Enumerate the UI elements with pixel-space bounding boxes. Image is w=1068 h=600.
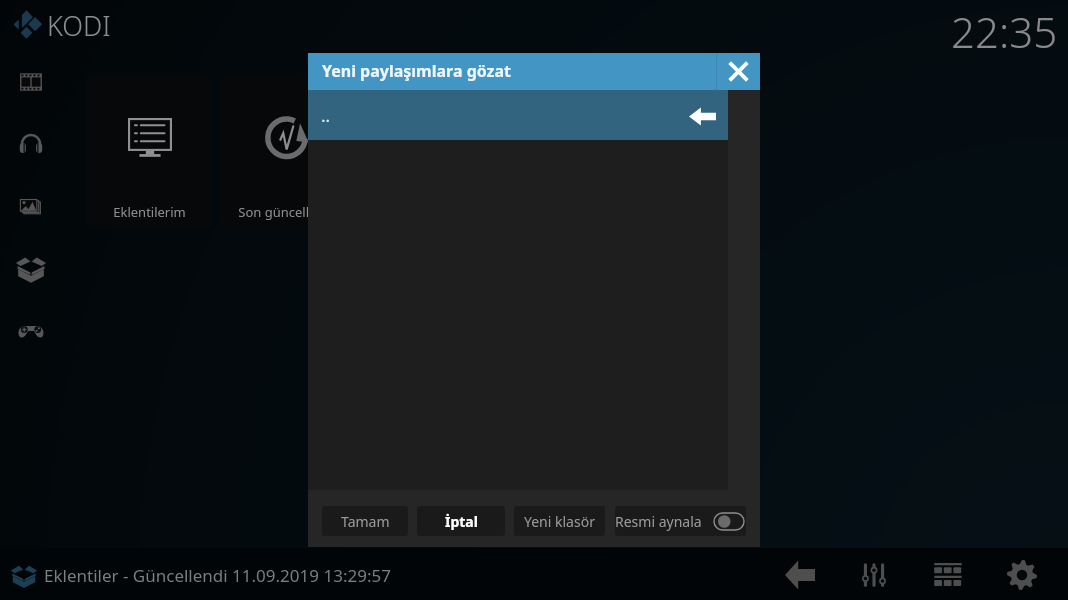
button[interactable]: Back bbox=[778, 553, 822, 597]
staticText: İptal bbox=[445, 512, 478, 531]
staticText: KODI bbox=[47, 7, 111, 44]
button[interactable]: Movies bbox=[10, 61, 52, 103]
staticText: 22:35 bbox=[951, 3, 1058, 60]
staticText: Yeni klasör bbox=[524, 512, 595, 531]
button[interactable]: View type bbox=[926, 553, 970, 597]
button[interactable]: .. bbox=[308, 90, 728, 140]
staticText: Eklentilerim bbox=[113, 203, 186, 221]
button[interactable]: Settings bbox=[1000, 553, 1044, 597]
button[interactable]: Add-ons bbox=[10, 247, 52, 289]
button[interactable]: Close bbox=[717, 53, 760, 90]
staticText: Eklentiler - Güncellendi 11.09.2019 13:2… bbox=[44, 564, 391, 587]
button[interactable]: Eklentilerim bbox=[87, 75, 212, 227]
button[interactable]: Yeni klasör bbox=[514, 506, 605, 536]
button[interactable]: Kodi home bbox=[2, 4, 122, 44]
button[interactable]: Eklentiler - Güncellendi 11.09.2019 13:2… bbox=[10, 561, 391, 589]
button[interactable]: Games bbox=[10, 310, 52, 352]
staticText: .. bbox=[321, 104, 331, 127]
button[interactable]: Pictures bbox=[10, 185, 52, 227]
button[interactable]: Filter bbox=[852, 553, 896, 597]
button[interactable]: Tamam bbox=[322, 506, 408, 536]
staticText: Son güncellene bbox=[238, 203, 332, 221]
button[interactable]: Son güncellene bbox=[222, 75, 347, 227]
button[interactable]: Yeni paylaşımlara gözat bbox=[308, 53, 716, 90]
button[interactable]: Resmi aynala bbox=[615, 506, 746, 536]
staticText: Resmi aynala bbox=[615, 512, 702, 531]
button[interactable]: İptal bbox=[417, 506, 505, 536]
staticText: Tamam bbox=[341, 512, 390, 531]
staticText: Yeni paylaşımlara gözat bbox=[322, 60, 512, 82]
button[interactable]: Music bbox=[10, 123, 52, 165]
